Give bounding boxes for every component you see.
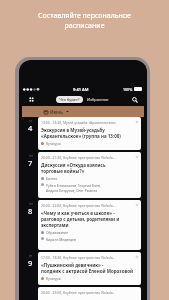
staticText: Составляйте персональное [38,11,131,21]
staticText: расписание [64,21,105,31]
staticText: Рубен Енокалопов, Георгий Боев, [46,183,101,188]
staticText: Образование [46,230,69,235]
staticText: Бизнес [46,176,58,181]
staticText: пн [29,154,33,158]
staticText: 100% [123,87,133,92]
staticText: чт [29,119,33,123]
staticText: 8 [28,206,33,216]
staticText: Июнь [50,109,63,115]
button[interactable]: Избранное [85,96,111,103]
staticText: 20:00 - 21:30, Клубное пространство Nole… [41,155,116,160]
staticText: торговые войны?» [41,168,85,174]
staticText: пн [29,202,33,206]
staticText: Дискуссия «Откуда взялись [41,162,106,168]
staticText: Избранное [87,97,109,102]
staticText: «Пушкинский девичник» - литературный [41,262,138,268]
staticText: 7 [28,158,33,168]
button[interactable]: Что будет? [56,96,83,103]
staticText: 9:41 AM [73,87,89,92]
staticText: «Архангельское» (группа на 13:00) [41,133,121,139]
staticText: 13:00 - 14:30, Музей-усадьба «Архангельс… [41,120,117,125]
button[interactable]: Меню [26,94,36,105]
staticText: Андрей Безруков, Олег Ремыга [46,188,98,193]
staticText: 4 [28,123,33,133]
staticText: Культура [46,141,61,146]
button[interactable]: 20:00 - 21:30, Клубное пространство Nole… [38,152,141,198]
staticText: Кирилл Медведев [46,237,76,242]
staticText: Экскурсия в Музей-усадьбу [41,127,105,133]
staticText: Культура [46,276,61,281]
staticText: 20:00 - 22:00, Клубное пространство Nole… [41,203,116,208]
staticText: разговор с детьми, родителями и [41,216,120,222]
button[interactable]: Июнь [22,106,144,117]
button[interactable]: Поиск [129,94,141,106]
staticText: 9 [28,258,33,268]
staticText: «Чему и как учиться в школе» - открытый [41,210,138,216]
button[interactable]: 17:00 - 18:30, Клубное пространство Nole… [38,252,141,285]
staticText: экспертами [41,222,69,228]
staticText: вт [29,254,33,258]
staticText: 17:00 - 18:30, Клубное пространство Nole… [41,255,116,260]
button[interactable]: 13:00 - 14:30, Музей-усадьба «Архангельс… [38,117,141,150]
button[interactable]: 20:00 - 23:00, Клубное пространство Nole… [38,287,141,300]
button[interactable]: 20:00 - 22:00, Клубное пространство Nole… [38,200,141,250]
staticText: полдник с актрисой Еленой Морозовой [41,268,133,274]
staticText: Что будет? [59,97,80,102]
staticText: 20:00 - 23:00, Клубное пространство Nole… [41,290,116,295]
